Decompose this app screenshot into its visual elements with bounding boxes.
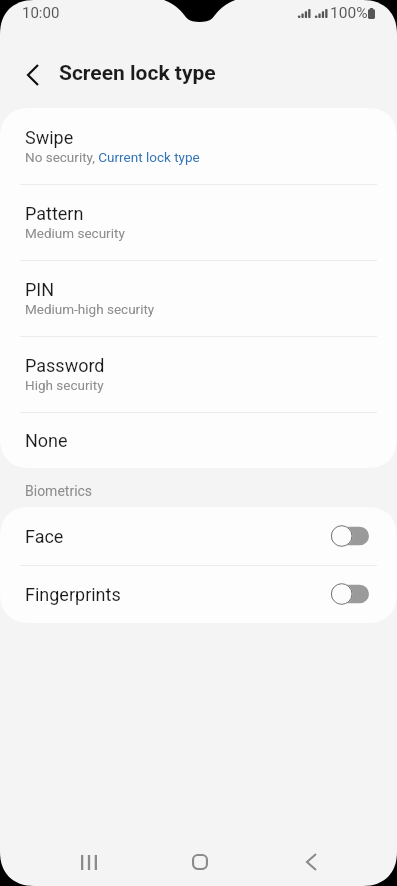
staticText: Medium security [25, 225, 125, 241]
staticText: Medium-high security [25, 301, 155, 317]
button[interactable]: PIN [0, 260, 397, 336]
button[interactable]: None [0, 412, 397, 468]
button[interactable]: Face [0, 507, 397, 565]
button[interactable]: Pattern [0, 184, 397, 260]
button[interactable]: Home [176, 838, 224, 886]
staticText: 10:00 [22, 4, 60, 22]
button[interactable]: Swipe [0, 108, 397, 184]
button[interactable]: Back [287, 838, 335, 886]
staticText: PIN [25, 279, 55, 300]
button[interactable]: Navigate up [10, 52, 55, 97]
staticText: Screen lock type [59, 61, 216, 86]
button[interactable]: Fingerprints [0, 565, 397, 623]
staticText: 100% [330, 4, 368, 22]
staticText: No security, Current lock type [25, 149, 200, 165]
button[interactable]: Recent apps [65, 838, 113, 886]
staticText: Password [25, 355, 105, 376]
staticText: Face [25, 526, 64, 547]
staticText: Biometrics [25, 483, 93, 499]
staticText: Pattern [25, 203, 84, 224]
staticText: High security [25, 377, 104, 393]
staticText: Fingerprints [25, 584, 121, 605]
button[interactable]: Password [0, 336, 397, 412]
staticText: Swipe [25, 127, 74, 148]
staticText: None [25, 430, 68, 451]
